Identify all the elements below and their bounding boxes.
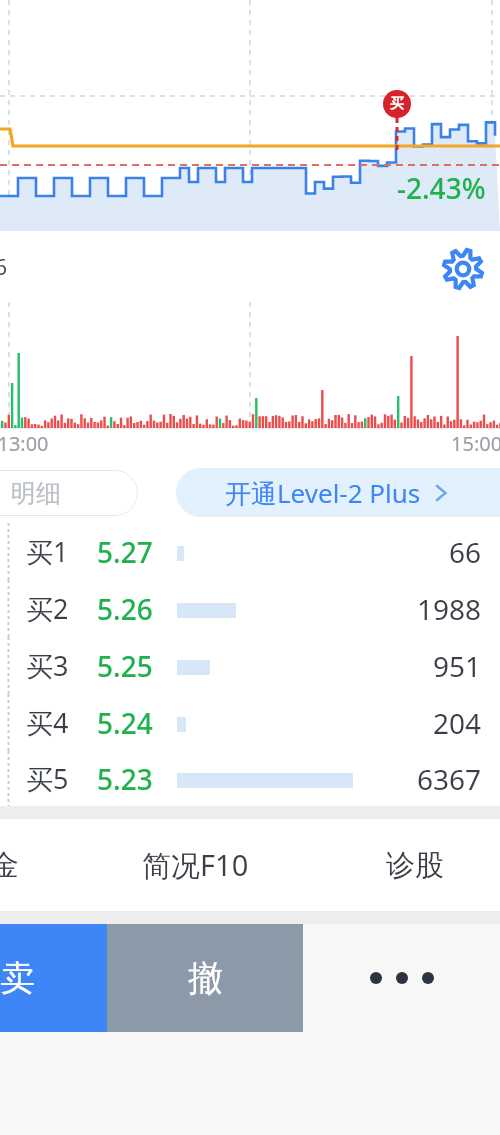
button[interactable]: 买4 <box>0 694 500 751</box>
staticText: 6367 <box>417 760 482 798</box>
staticText: 买1 <box>26 533 69 570</box>
staticText: 买3 <box>26 647 69 684</box>
staticText: 204 <box>433 704 482 742</box>
button[interactable]: More options <box>303 924 500 1032</box>
staticText: 开通Level-2 Plus <box>225 475 421 511</box>
button[interactable]: 简况F10 <box>60 819 330 911</box>
button[interactable]: 买5 <box>0 751 500 806</box>
staticText: 1988 <box>417 590 482 628</box>
button[interactable]: 明细 <box>0 470 138 516</box>
staticText: 66 <box>449 533 482 571</box>
button[interactable]: Settings <box>437 243 489 295</box>
staticText: 明细 <box>11 478 61 509</box>
button[interactable]: 买1 <box>0 523 500 580</box>
staticText: 撤 <box>188 956 223 1000</box>
staticText: 买5 <box>26 760 69 797</box>
staticText: 5.23 <box>97 760 153 798</box>
staticText: 5.26 <box>97 590 153 628</box>
staticText: 卖 <box>0 956 35 1000</box>
button[interactable]: 开通Level-2 Plus <box>176 468 500 517</box>
button[interactable]: 买3 <box>0 637 500 694</box>
button[interactable]: 卖 <box>0 924 107 1032</box>
staticText: 买4 <box>26 704 69 741</box>
button[interactable]: 买2 <box>0 580 500 637</box>
staticText: /13:00 <box>0 430 49 457</box>
staticText: 金 <box>0 847 19 884</box>
staticText: 5.27 <box>97 533 153 571</box>
button[interactable]: 金 <box>0 819 60 911</box>
button[interactable]: 撤 <box>107 924 303 1032</box>
staticText: 5.25 <box>97 647 153 685</box>
button[interactable]: 诊股 <box>330 819 500 911</box>
staticText: 951 <box>433 647 482 685</box>
staticText: -2.43% <box>397 169 486 207</box>
staticText: 6 <box>0 253 8 282</box>
staticText: 诊股 <box>386 847 444 884</box>
staticText: 简况F10 <box>142 845 249 885</box>
staticText: 15:00 <box>451 430 500 457</box>
staticText: 5.24 <box>97 704 153 742</box>
staticText: 买2 <box>26 590 69 627</box>
staticText: 买 <box>390 95 404 113</box>
